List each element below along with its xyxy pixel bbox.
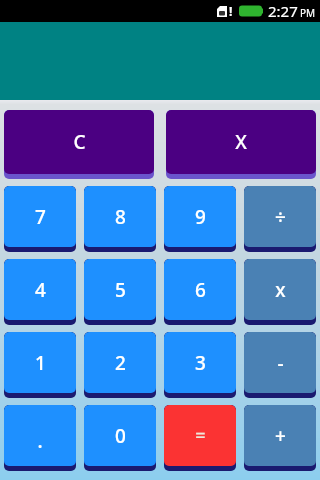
- button[interactable]: 5: [84, 259, 156, 325]
- staticText: +: [275, 423, 286, 449]
- staticText: 0: [115, 423, 126, 449]
- staticText: -: [277, 350, 284, 376]
- button[interactable]: 4: [4, 259, 76, 325]
- button[interactable]: C: [4, 110, 154, 179]
- staticText: C: [73, 129, 86, 155]
- button[interactable]: =: [164, 405, 236, 471]
- staticText: 9: [195, 204, 206, 230]
- staticText: =: [195, 423, 206, 448]
- staticText: !: [229, 3, 233, 19]
- staticText: 7: [35, 204, 46, 230]
- staticText: X: [235, 129, 247, 155]
- button[interactable]: 6: [164, 259, 236, 325]
- button[interactable]: -: [244, 332, 316, 398]
- staticText: 2:27: [268, 1, 298, 21]
- button[interactable]: 3: [164, 332, 236, 398]
- staticText: 8: [115, 204, 126, 230]
- button[interactable]: 2: [84, 332, 156, 398]
- button[interactable]: ÷: [244, 186, 316, 252]
- staticText: 5: [115, 277, 126, 303]
- staticText: 4: [35, 277, 46, 303]
- button[interactable]: x: [244, 259, 316, 325]
- staticText: 2: [115, 350, 126, 376]
- button[interactable]: +: [244, 405, 316, 471]
- staticText: ÷: [275, 204, 286, 230]
- staticText: 6: [195, 277, 206, 303]
- staticText: 3: [195, 350, 206, 376]
- button[interactable]: 9: [164, 186, 236, 252]
- button[interactable]: 7: [4, 186, 76, 252]
- button[interactable]: 1: [4, 332, 76, 398]
- button[interactable]: .: [4, 405, 76, 471]
- staticText: .: [37, 428, 43, 454]
- staticText: PM: [300, 6, 316, 20]
- button[interactable]: 8: [84, 186, 156, 252]
- staticText: 1: [35, 350, 46, 376]
- button[interactable]: X: [166, 110, 316, 179]
- button[interactable]: 0: [84, 405, 156, 471]
- staticText: x: [275, 277, 286, 303]
